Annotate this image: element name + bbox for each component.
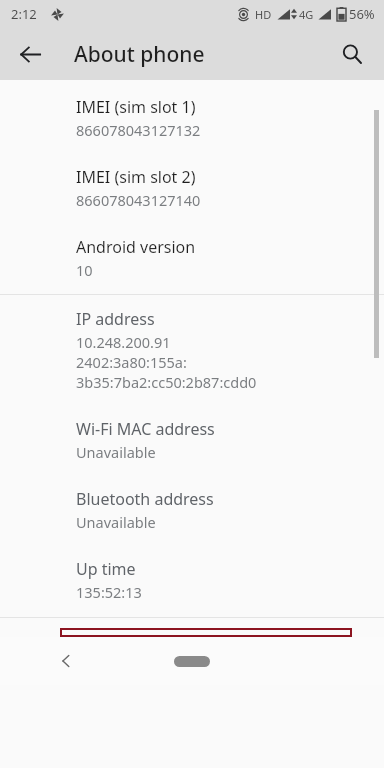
staticText: IMEI (sim slot 1) <box>76 96 196 118</box>
staticText: HD <box>255 7 272 22</box>
staticText: Unavailable <box>76 512 156 532</box>
staticText: 3b35:7ba2:cc50:2b87:cdd0 <box>76 372 257 392</box>
button[interactable]: Back <box>6 30 54 78</box>
staticText: 866078043127140 <box>76 190 201 210</box>
staticText: 135:52:13 <box>76 582 142 602</box>
button[interactable]: Wi-Fi MAC address <box>0 405 384 475</box>
staticText: 10.248.200.91 <box>76 332 171 352</box>
staticText: 10 <box>76 260 93 280</box>
button[interactable]: Back <box>48 643 84 679</box>
staticText: 4G <box>299 7 314 22</box>
staticText: 2:12 <box>11 5 37 23</box>
staticText: IMEI (sim slot 2) <box>76 166 196 188</box>
staticText: Wi-Fi MAC address <box>76 418 215 440</box>
button[interactable]: IP address <box>0 295 384 405</box>
staticText: About phone <box>74 40 205 69</box>
button[interactable]: Home <box>169 647 215 675</box>
staticText: 56% <box>349 5 375 23</box>
button[interactable]: Android version <box>0 223 384 293</box>
staticText: Up time <box>76 558 136 580</box>
staticText: Bluetooth address <box>76 488 214 510</box>
button[interactable]: IMEI (sim slot 1) <box>0 83 384 153</box>
button[interactable]: Bluetooth address <box>0 475 384 545</box>
button[interactable]: Search <box>328 30 376 78</box>
button[interactable]: Up time <box>0 545 384 615</box>
button[interactable]: IMEI (sim slot 2) <box>0 153 384 223</box>
staticText: 2402:3a80:155a: <box>76 352 187 372</box>
staticText: Android version <box>76 236 196 258</box>
button[interactable]: Build number <box>60 628 352 637</box>
staticText: 866078043127132 <box>76 120 201 140</box>
staticText: Unavailable <box>76 442 156 462</box>
staticText: IP address <box>76 308 155 330</box>
